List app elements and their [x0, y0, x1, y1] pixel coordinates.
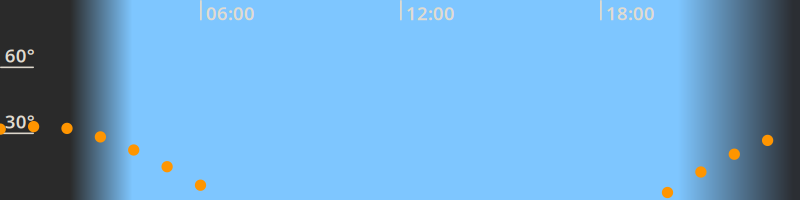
staticText: 06:00 — [206, 1, 255, 25]
staticText: 18:00 — [606, 1, 655, 25]
staticText: 12:00 — [406, 1, 455, 25]
staticText: 30° — [5, 109, 35, 134]
staticText: 60° — [5, 43, 35, 68]
